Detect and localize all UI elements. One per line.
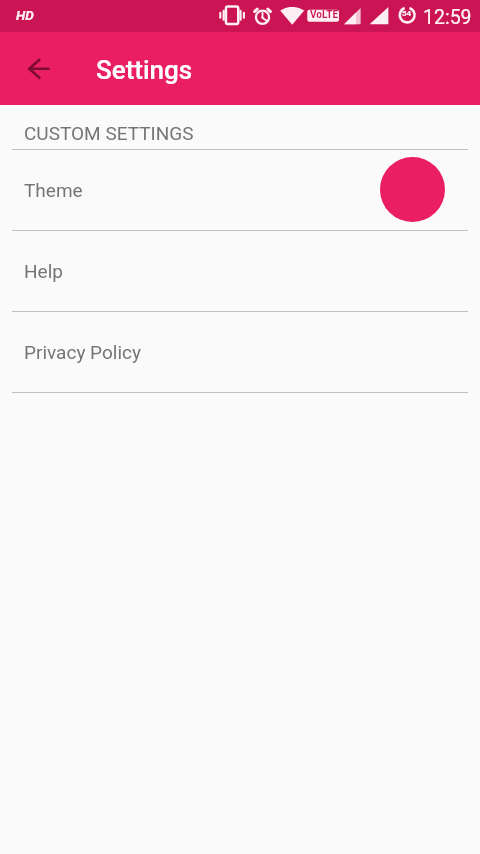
button[interactable]: Theme xyxy=(0,150,480,230)
staticText: HD xyxy=(16,7,34,23)
staticText: Privacy Policy xyxy=(24,341,141,363)
button[interactable]: Privacy Policy xyxy=(0,312,480,392)
staticText: VoLTE xyxy=(310,9,339,21)
button[interactable]: Help xyxy=(0,231,480,311)
staticText: Help xyxy=(24,260,63,282)
button[interactable]: Pick theme colour xyxy=(380,157,445,222)
staticText: 54 xyxy=(402,9,412,18)
staticText: Settings xyxy=(96,55,193,85)
staticText: Theme xyxy=(24,179,83,201)
staticText: 12:59 xyxy=(423,6,472,29)
button[interactable]: Navigate up xyxy=(19,49,59,89)
staticText: CUSTOM SETTINGS xyxy=(24,122,194,144)
